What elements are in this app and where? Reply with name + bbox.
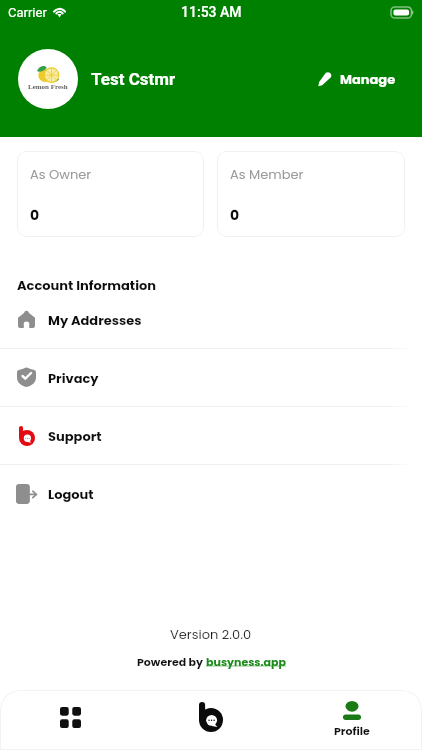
staticText: Logout xyxy=(48,485,94,503)
staticText: Carrier xyxy=(8,5,47,20)
staticText: Manage xyxy=(340,70,396,88)
button[interactable]: Privacy xyxy=(0,349,422,406)
staticText: My Addresses xyxy=(48,311,142,329)
staticText: Powered by xyxy=(137,654,206,669)
button[interactable]: Manage xyxy=(312,62,402,96)
button[interactable]: As Owner xyxy=(17,151,204,237)
staticText: As Owner xyxy=(30,165,92,183)
staticText: 0 xyxy=(230,205,240,225)
button[interactable]: busyness.app xyxy=(206,654,286,669)
staticText: Test Cstmr xyxy=(91,69,176,89)
button[interactable]: Logout xyxy=(0,465,422,522)
staticText: Version 2.0.0 xyxy=(170,625,252,643)
button[interactable]: Dashboard xyxy=(0,690,140,750)
staticText: Lemon Fresh xyxy=(28,83,68,91)
staticText: Support xyxy=(48,427,102,445)
button[interactable]: As Member xyxy=(217,151,405,237)
staticText: Account Information xyxy=(17,276,157,294)
button[interactable]: My Addresses xyxy=(0,291,422,348)
button[interactable]: Support xyxy=(0,407,422,464)
button[interactable]: Profile xyxy=(281,690,422,750)
button[interactable]: Home xyxy=(140,690,281,750)
staticText: As Member xyxy=(230,165,304,183)
staticText: Privacy xyxy=(48,369,99,387)
staticText: 11:53 AM xyxy=(181,4,242,20)
staticText: 0 xyxy=(30,205,40,225)
staticText: Profile xyxy=(334,723,370,738)
